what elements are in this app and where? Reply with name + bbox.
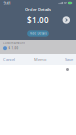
staticText: Memo <box>34 57 46 62</box>
staticText: Custom Amount <box>3 41 25 45</box>
staticText: $ 1.00 <box>9 46 19 50</box>
button[interactable]: Cancel <box>3 57 15 62</box>
staticText: Hide Details <box>29 32 46 35</box>
staticText: $1.00 <box>27 15 49 25</box>
button[interactable]: Payment details <box>63 16 70 24</box>
button[interactable]: Hide Details <box>27 30 49 37</box>
staticText: Cancel <box>3 57 15 62</box>
button[interactable]: Save <box>65 57 73 62</box>
staticText: Save <box>65 57 73 62</box>
staticText: 9:41 <box>3 0 10 6</box>
staticText: Order Details <box>25 7 51 12</box>
